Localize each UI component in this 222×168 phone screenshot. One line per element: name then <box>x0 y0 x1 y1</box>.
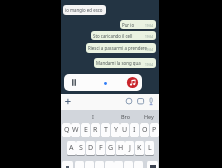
staticText: Q <box>64 125 70 135</box>
button[interactable]: A <box>67 141 76 155</box>
staticText: S <box>79 143 83 153</box>
button[interactable] <box>62 161 73 168</box>
button[interactable] <box>146 95 156 108</box>
button[interactable]: I <box>83 110 103 122</box>
button[interactable]: K <box>135 141 144 155</box>
staticText: G <box>108 143 114 153</box>
button[interactable] <box>69 76 81 89</box>
button[interactable]: E <box>81 123 90 137</box>
button[interactable] <box>95 161 104 168</box>
button[interactable]: T <box>101 123 110 137</box>
staticText: A <box>69 143 74 153</box>
staticText: K <box>137 143 142 153</box>
staticText: Mandami la song qua <box>96 60 141 66</box>
button[interactable]: H <box>116 141 125 155</box>
button[interactable]: R <box>91 123 100 137</box>
button[interactable] <box>64 74 142 91</box>
button[interactable]: G <box>106 141 115 155</box>
staticText: R <box>93 125 98 135</box>
button[interactable]: Hey <box>139 110 159 122</box>
button[interactable] <box>127 77 138 88</box>
button[interactable] <box>62 95 73 108</box>
staticText: E <box>84 125 88 135</box>
button[interactable]: O <box>140 123 149 137</box>
staticText: io mangio ed esco <box>65 7 103 13</box>
button[interactable] <box>75 161 84 168</box>
staticText: F <box>99 143 103 153</box>
staticText: T <box>104 125 108 135</box>
staticText: P <box>152 125 157 135</box>
button[interactable]: L <box>145 141 154 155</box>
staticText: W <box>72 125 79 135</box>
button[interactable] <box>124 161 133 168</box>
staticText: O <box>142 125 148 135</box>
button[interactable]: W <box>71 123 80 137</box>
button[interactable] <box>105 161 114 168</box>
staticText: D <box>88 143 94 153</box>
staticText: Sto caricando il cell <box>93 33 133 39</box>
staticText: I <box>92 113 94 120</box>
button[interactable]: io mangio ed esco <box>63 5 106 15</box>
staticText: 19:54 <box>145 48 154 52</box>
button[interactable] <box>124 95 134 108</box>
button[interactable] <box>135 95 145 108</box>
button[interactable]: I <box>130 123 139 137</box>
button[interactable]: Q <box>62 123 71 137</box>
button[interactable]: Mandami la song qua <box>94 58 156 68</box>
staticText: H <box>118 143 124 153</box>
button[interactable]: Pur io <box>120 20 156 29</box>
staticText: J <box>129 143 131 153</box>
button[interactable]: S <box>76 141 85 155</box>
button[interactable] <box>85 161 94 168</box>
button[interactable]: Riesci a passarmi a prendere <box>86 43 156 53</box>
staticText: 19:54 <box>145 35 154 39</box>
button[interactable] <box>147 161 158 168</box>
button[interactable] <box>114 161 123 168</box>
button[interactable]: Bro <box>116 110 136 122</box>
button[interactable]: Y <box>111 123 120 137</box>
staticText: Riesci a passarmi a prendere <box>88 45 148 51</box>
button[interactable] <box>134 161 143 168</box>
staticText: Y <box>114 125 118 135</box>
staticText: L <box>148 143 152 153</box>
staticText: Hey <box>144 113 154 120</box>
staticText: U <box>122 125 128 135</box>
staticText: Pur io <box>122 22 135 28</box>
button[interactable]: D <box>86 141 95 155</box>
button[interactable]: Sto caricando il cell <box>91 31 156 40</box>
staticText: Bro <box>121 113 131 120</box>
button[interactable]: F <box>96 141 105 155</box>
staticText: 19:54 <box>145 63 154 67</box>
staticText: 19:54 <box>145 24 154 28</box>
staticText: I <box>133 125 136 135</box>
button[interactable]: U <box>120 123 129 137</box>
button[interactable]: J <box>125 141 134 155</box>
button[interactable]: P <box>150 123 159 137</box>
